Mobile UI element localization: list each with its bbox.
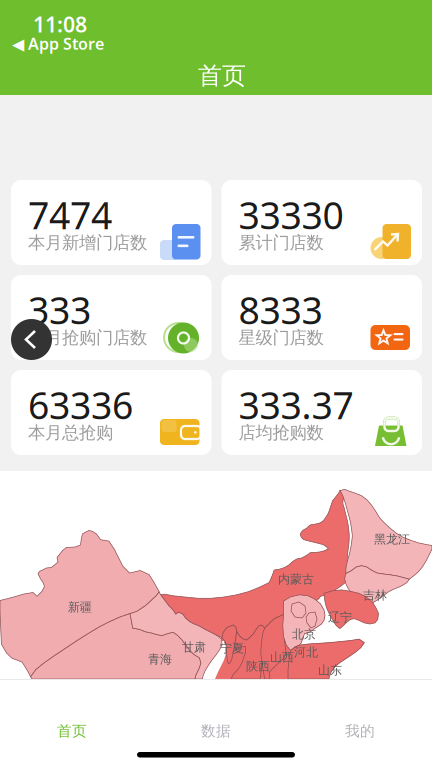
button[interactable]: 333 [11, 275, 211, 360]
staticText: 山东 [318, 663, 342, 678]
button[interactable]: 8333 [221, 275, 422, 360]
staticText: 甘肃 [182, 640, 206, 655]
staticText: 7474 [28, 190, 112, 240]
staticText: 黑龙江 [374, 532, 410, 547]
staticText: 33330 [238, 190, 343, 240]
staticText: 星级门店数 [238, 327, 323, 348]
staticText: 首页 [57, 722, 87, 740]
staticText: 11:08 [33, 10, 87, 38]
staticText: 辽宁 [328, 610, 352, 625]
button[interactable]: 63336 [11, 370, 211, 455]
staticText: 本月新增门店数 [28, 232, 147, 253]
button[interactable]: 333.37 [221, 370, 422, 455]
button[interactable]: 首页 [0, 687, 144, 747]
staticText: 新疆 [68, 600, 92, 615]
staticText: 陕西 [246, 659, 270, 674]
staticText: 8333 [238, 285, 322, 335]
staticText: 吉林 [363, 588, 387, 603]
staticText: 333 [28, 285, 91, 335]
staticText: 山西 [270, 650, 294, 665]
staticText: 河北 [294, 645, 318, 660]
button[interactable]: 7474 [11, 180, 211, 265]
staticText: 我的 [345, 722, 375, 740]
staticText: 店均抢购数 [238, 422, 323, 443]
staticText: 内蒙古 [278, 572, 314, 587]
staticText: 本月抢购门店数 [28, 327, 147, 348]
staticText: 宁夏 [220, 641, 244, 656]
staticText: 首页 [198, 61, 246, 90]
staticText: 北京 [292, 627, 316, 642]
staticText: 数据 [201, 722, 231, 740]
staticText: 累计门店数 [238, 232, 323, 253]
button[interactable]: 我的 [288, 687, 432, 747]
staticText: 青海 [148, 652, 172, 667]
button[interactable]: 数据 [144, 687, 288, 747]
staticText: ◀ App Store [12, 33, 104, 54]
staticText: 本月总抢购 [28, 422, 113, 443]
staticText: 333.37 [238, 380, 353, 430]
button[interactable]: Back [11, 319, 52, 360]
button[interactable]: 33330 [221, 180, 422, 265]
staticText: 63336 [28, 380, 133, 430]
